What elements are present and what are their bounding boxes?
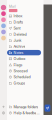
button[interactable]: Manage folders — [7, 104, 43, 110]
button[interactable]: Groups — [7, 80, 43, 86]
staticText: Manage folders — [13, 105, 38, 109]
staticText: Inbox — [13, 14, 22, 18]
staticText: Scheduled — [13, 75, 30, 79]
button[interactable]: Inbox — [7, 13, 43, 19]
staticText: Sent — [13, 26, 20, 30]
button[interactable]: Compose — [45, 104, 50, 112]
button[interactable]: Drafts — [7, 19, 43, 25]
staticText: Archive — [13, 44, 25, 49]
button[interactable]: Account — [0, 4, 7, 11]
staticText: Snoozed — [13, 69, 27, 73]
button[interactable]: Account — [0, 17, 7, 23]
button[interactable]: Account — [0, 35, 7, 41]
button[interactable]: Help & feedback — [7, 110, 43, 116]
staticText: Outbox — [13, 57, 25, 61]
button[interactable]: Notes — [7, 50, 43, 56]
button[interactable]: Outbox — [7, 56, 43, 62]
staticText: Drafts — [13, 20, 23, 24]
staticText: Junk — [13, 38, 21, 43]
staticText: Deleted — [13, 32, 26, 37]
button[interactable]: Deleted — [7, 31, 43, 37]
staticText: Mail — [9, 5, 16, 8]
button[interactable]: Account — [0, 29, 7, 35]
button[interactable]: Sent — [7, 25, 43, 31]
staticText: Notes — [13, 50, 23, 55]
button[interactable]: Archive — [7, 43, 43, 50]
button[interactable]: Scheduled — [7, 74, 43, 80]
button[interactable]: Snoozed — [7, 68, 43, 74]
button[interactable]: Flags — [7, 62, 43, 68]
button[interactable]: Settings — [0, 110, 7, 116]
button[interactable]: Junk — [7, 37, 43, 43]
staticText: Help & feedback — [13, 111, 40, 115]
button[interactable]: Account — [0, 23, 7, 29]
staticText: Flags — [13, 63, 22, 67]
staticText: Groups — [13, 81, 25, 85]
button[interactable]: Account — [0, 11, 7, 17]
button[interactable]: Add account — [0, 104, 7, 110]
